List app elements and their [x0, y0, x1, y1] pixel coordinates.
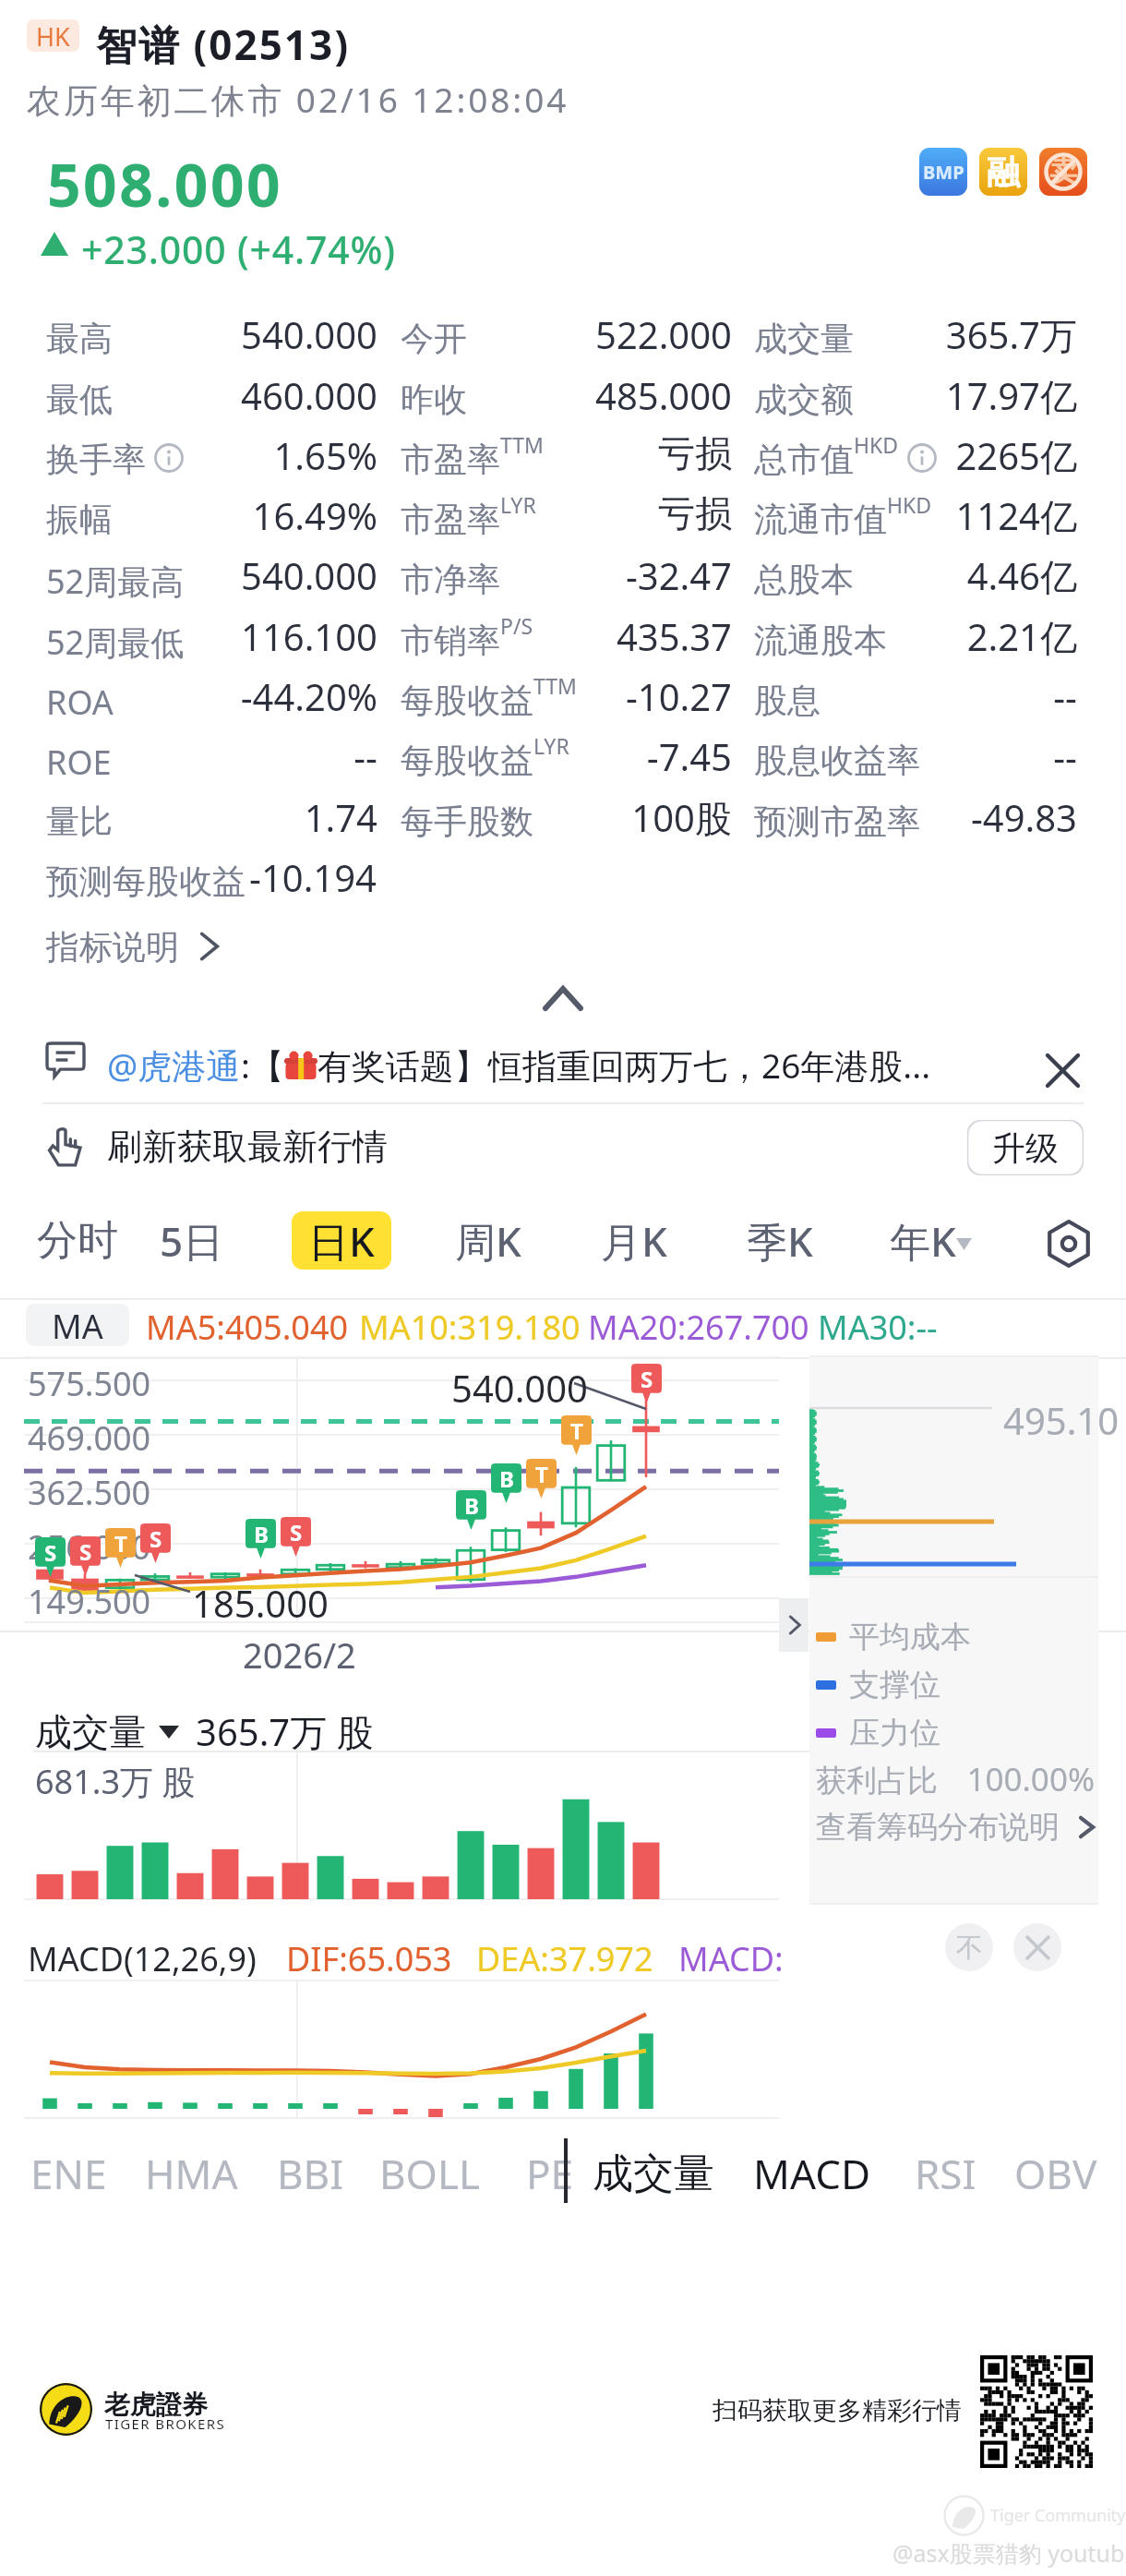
staticText: -7.45 [437, 731, 732, 781]
staticText: 1.74 [82, 792, 377, 842]
button[interactable]: 成交量 [589, 2140, 718, 2207]
staticText: 256.000 [28, 1524, 151, 1570]
button[interactable]: BMP [919, 148, 967, 196]
button[interactable]: 季K [730, 1211, 830, 1270]
button[interactable]: HMA [126, 2140, 256, 2207]
button[interactable]: Chart settings [1037, 1212, 1100, 1275]
staticText: 市盈率 [401, 439, 500, 480]
button[interactable]: BOLL [365, 2140, 495, 2207]
button[interactable]: Margin trading [979, 148, 1027, 196]
staticText: 平均成本 [849, 1618, 971, 1656]
staticText: 每股收益 [401, 680, 533, 721]
staticText: 成交额 [754, 379, 854, 420]
staticText: 681.3万 股 [35, 1759, 196, 1804]
staticText: :【 [241, 1041, 284, 1089]
button[interactable]: 成交量 [35, 1706, 374, 1757]
button[interactable]: Hide indicator [945, 1923, 993, 1971]
button[interactable]: MACD [748, 2140, 877, 2207]
staticText: -32.47 [437, 550, 732, 600]
staticText: 495.10 [1003, 1395, 1120, 1445]
staticText: 月K [601, 1213, 667, 1269]
staticText: 365.7万 股 [196, 1706, 374, 1757]
staticText: S [44, 1537, 57, 1567]
staticText: 52周最低 [46, 620, 185, 665]
staticText: 亏损 [437, 430, 732, 476]
staticText: 100.00% [910, 1757, 1095, 1801]
staticText: 5日 [160, 1213, 224, 1269]
staticText: 压力位 [849, 1714, 940, 1752]
button[interactable]: 月K [584, 1211, 684, 1270]
staticText: RSI [915, 2146, 976, 2201]
staticText: 有奖话题】恒指重回两万七，26年港股... [317, 1041, 931, 1089]
staticText: DIF:65.053 [286, 1936, 452, 1981]
button[interactable]: Expand chip panel [779, 1598, 809, 1652]
staticText: 4.46亿 [782, 550, 1077, 601]
button[interactable]: No short selling [1039, 148, 1087, 196]
button[interactable]: 指标说明 [26, 912, 220, 981]
staticText: B [464, 1490, 479, 1520]
button[interactable]: @虎港通 [0, 1025, 1126, 1102]
button[interactable]: 周K [438, 1211, 538, 1270]
button[interactable]: 升级 [967, 1120, 1084, 1175]
button[interactable]: MA [26, 1304, 129, 1346]
button[interactable]: Tiger Brokers [40, 2383, 92, 2436]
staticText: @asx股票猎豹 youtube [892, 2537, 1126, 2569]
staticText: -49.83 [782, 792, 1077, 842]
staticText: BBI [277, 2146, 344, 2201]
staticText: 农历年初二休市 02/16 12:08:04 [27, 76, 569, 123]
staticText: +23.000 (+4.74%) [81, 223, 396, 275]
staticText: Tiger Community [990, 2504, 1126, 2527]
staticText: -- [82, 731, 377, 781]
staticText: 预测每股收益 [46, 861, 246, 902]
staticText: 市销率 [401, 620, 500, 661]
staticText: S [641, 1364, 653, 1393]
staticText: 分时 [37, 1215, 118, 1266]
staticText: 540.000 [82, 309, 377, 359]
staticText: 52周最高 [46, 559, 185, 604]
button[interactable]: OBV [991, 2140, 1120, 2207]
button[interactable]: RSI [880, 2140, 1010, 2207]
staticText: 435.37 [437, 611, 732, 661]
staticText: 智谱 (02513) [96, 17, 351, 72]
staticText: 365.7万 [782, 309, 1077, 360]
staticText: HMA [145, 2146, 238, 2201]
staticText: 卖 [1049, 154, 1077, 189]
staticText: T [114, 1528, 127, 1558]
button[interactable]: PE [485, 2140, 615, 2207]
staticText: MACD [753, 2146, 871, 2201]
staticText: 融 [987, 151, 1020, 193]
staticText: 昨收 [401, 379, 467, 420]
staticText: 年K [890, 1213, 956, 1269]
staticText: 预测市盈率 [754, 800, 920, 842]
staticText: 总市值 [754, 439, 854, 480]
staticText: TTM [533, 671, 577, 700]
staticText: 460.000 [82, 370, 377, 420]
button[interactable]: ENE [4, 2140, 133, 2207]
staticText: 2265亿 [782, 430, 1077, 481]
staticText: 换手率 [46, 439, 146, 480]
button[interactable]: BBI [246, 2140, 375, 2207]
staticText: -10.194 [249, 852, 377, 902]
staticText: TTM [500, 430, 544, 459]
staticText: 最高 [46, 318, 113, 359]
staticText: S [290, 1517, 303, 1547]
button[interactable]: Close banner [1032, 1040, 1093, 1101]
staticText: 575.500 [28, 1361, 151, 1406]
staticText: 刷新获取最新行情 [107, 1125, 388, 1169]
button[interactable]: 5日 [142, 1211, 242, 1270]
staticText: OBV [1014, 2146, 1097, 2201]
button[interactable]: Collapse details [489, 969, 637, 1027]
staticText: 成交量 [754, 318, 854, 359]
staticText: 振幅 [46, 499, 113, 540]
button[interactable]: 查看筹码分布说明 [816, 1808, 1100, 1847]
button[interactable]: 日K [292, 1211, 391, 1270]
button[interactable]: 分时 [28, 1211, 127, 1270]
staticText: 流通市值 [754, 499, 887, 540]
staticText: S [150, 1523, 162, 1553]
staticText: 362.500 [28, 1470, 151, 1515]
button[interactable]: Close indicator [1013, 1923, 1061, 1971]
staticText: 2.21亿 [782, 611, 1077, 662]
staticText: 每股收益 [401, 740, 533, 781]
button[interactable]: 年K [873, 1211, 973, 1270]
staticText: 508.000 [47, 144, 283, 224]
